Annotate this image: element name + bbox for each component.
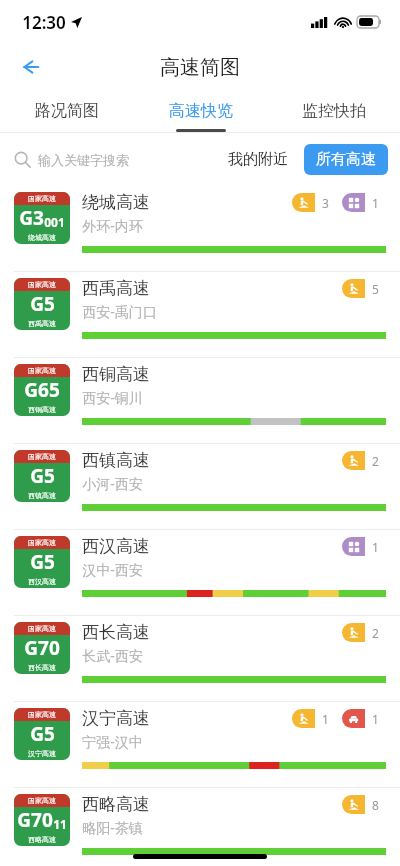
button[interactable]: 监控快拍 (267, 90, 400, 132)
staticText: 西安-铜川 (82, 388, 143, 407)
staticText: 绕城高速 (82, 192, 150, 213)
button[interactable]: 所有高速 (304, 144, 388, 175)
staticText: 国家高速 (28, 538, 56, 547)
staticText: 汉宁高速 (82, 708, 150, 729)
staticText: 西镇高速 (28, 491, 56, 500)
staticText: 8 (372, 797, 379, 813)
button[interactable]: Back (8, 45, 52, 89)
button[interactable]: 1 (292, 709, 336, 728)
staticText: 西铜高速 (82, 364, 150, 385)
button[interactable]: 3 (292, 193, 336, 212)
button[interactable]: 国家高速 (0, 616, 400, 701)
button[interactable]: 国家高速 (0, 358, 400, 443)
button[interactable]: 高速快览 (134, 90, 267, 132)
button[interactable]: 2 (342, 451, 386, 470)
staticText: 12:30 (22, 11, 66, 34)
staticText: 西长高速 (82, 622, 150, 643)
staticText: 西禹高速 (82, 278, 150, 299)
staticText: 长武-西安 (82, 646, 143, 665)
staticText: 国家高速 (28, 710, 56, 719)
button[interactable]: 5 (342, 279, 386, 298)
button[interactable]: 2 (342, 623, 386, 642)
staticText: 汉中-西安 (82, 560, 143, 579)
staticText: 国家高速 (28, 624, 56, 633)
button[interactable]: 我的附近 (220, 144, 296, 175)
staticText: 国家高速 (28, 280, 56, 289)
staticText: 1 (322, 711, 329, 727)
staticText: 001 (44, 214, 65, 230)
button[interactable]: 国家高速 (0, 788, 400, 866)
staticText: 西汉高速 (28, 577, 56, 586)
staticText: G70 (24, 635, 60, 661)
staticText: G5 (30, 549, 55, 575)
button[interactable]: 国家高速 (0, 272, 400, 357)
staticText: 国家高速 (28, 366, 56, 375)
staticText: 国家高速 (28, 194, 56, 203)
button[interactable]: 8 (342, 795, 386, 814)
staticText: 国家高速 (28, 452, 56, 461)
staticText: G65 (24, 377, 60, 403)
staticText: 外环-内环 (82, 216, 143, 235)
staticText: 略阳-茶镇 (82, 818, 143, 837)
button[interactable]: 路况简图 (0, 90, 134, 132)
staticText: 西铜高速 (28, 405, 56, 414)
button[interactable]: 1 (342, 193, 386, 212)
staticText: 西安-禹门口 (82, 302, 157, 321)
staticText: 1 (372, 711, 379, 727)
staticText: 西镇高速 (82, 450, 150, 471)
staticText: G5 (30, 291, 55, 317)
staticText: 5 (372, 281, 379, 297)
staticText: G5 (30, 721, 55, 747)
staticText: 西长高速 (28, 663, 56, 672)
button[interactable]: 1 (342, 709, 386, 728)
staticText: 路况简图 (35, 101, 99, 121)
staticText: 2 (372, 625, 379, 641)
button[interactable]: 国家高速 (0, 702, 400, 787)
button[interactable]: 国家高速 (0, 530, 400, 615)
staticText: 汉宁高速 (28, 749, 56, 758)
staticText: 11 (53, 816, 67, 832)
button[interactable]: 国家高速 (0, 186, 400, 271)
button[interactable]: 国家高速 (0, 444, 400, 529)
staticText: 监控快拍 (302, 101, 366, 121)
staticText: 高速简图 (160, 55, 240, 80)
staticText: 所有高速 (316, 150, 376, 169)
staticText: 我的附近 (228, 150, 288, 169)
staticText: 西禹高速 (28, 319, 56, 328)
staticText: 1 (372, 195, 379, 211)
staticText: 西略高速 (82, 794, 150, 815)
staticText: 小河-西安 (82, 474, 143, 493)
staticText: 西汉高速 (82, 536, 150, 557)
staticText: 3 (322, 195, 329, 211)
staticText: 高速快览 (169, 101, 233, 121)
staticText: 1 (372, 539, 379, 555)
staticText: 国家高速 (28, 796, 56, 805)
staticText: G3 (19, 205, 44, 231)
button[interactable]: 输入关键字搜索 (14, 151, 129, 168)
staticText: G5 (30, 463, 55, 489)
staticText: 输入关键字搜索 (38, 152, 129, 168)
staticText: 2 (372, 453, 379, 469)
staticText: 西略高速 (28, 835, 56, 844)
staticText: 绕城高速 (28, 233, 56, 242)
button[interactable]: 1 (342, 537, 386, 556)
staticText: G70 (17, 807, 53, 833)
staticText: 宁强-汉中 (82, 732, 143, 751)
